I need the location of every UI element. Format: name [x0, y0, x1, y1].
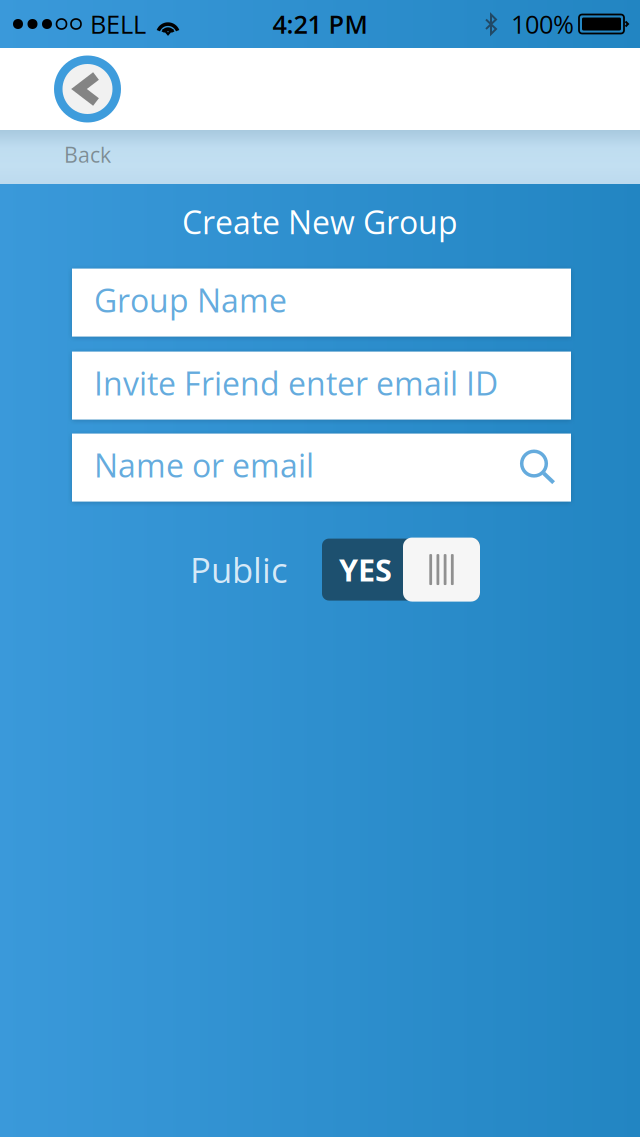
staticText: 100% [511, 7, 574, 41]
staticText: Public [190, 546, 288, 593]
button[interactable]: Back [54, 55, 121, 122]
button[interactable]: Invite Friend enter email ID [72, 352, 571, 420]
button[interactable]: Public, on [322, 538, 480, 602]
staticText: BELL [90, 7, 146, 41]
staticText: Name or email [94, 443, 314, 487]
button[interactable]: Name or email [72, 434, 571, 502]
staticText: Back [64, 140, 111, 169]
staticText: YES [339, 549, 392, 590]
staticText: Create New Group [182, 200, 458, 244]
staticText: Invite Friend enter email ID [94, 361, 498, 405]
button[interactable]: Group Name [72, 269, 571, 337]
staticText: 4:21 PM [272, 7, 367, 41]
staticText: Group Name [94, 278, 287, 322]
